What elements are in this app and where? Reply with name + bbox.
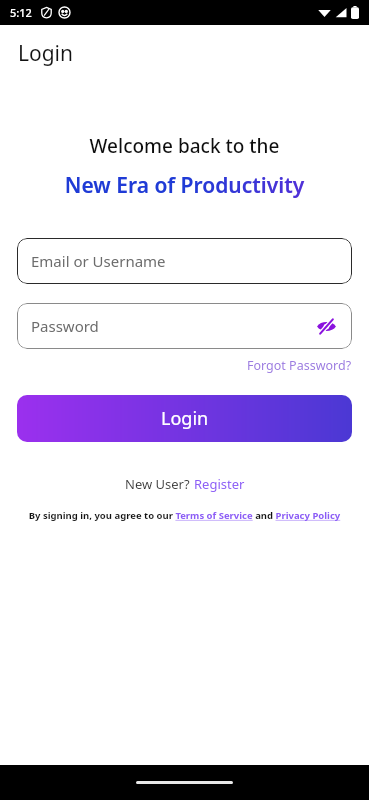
staticText: Login (161, 406, 209, 431)
staticText: New Era of Productivity (0, 171, 369, 200)
button[interactable]: Show password (312, 312, 340, 340)
staticText: New User? (125, 475, 194, 493)
staticText: Login (18, 39, 74, 68)
staticText: By signing in, you agree to our Terms of… (0, 509, 369, 522)
button[interactable]: Forgot Password? (247, 357, 352, 374)
button[interactable]: Login (17, 395, 352, 442)
staticText: Email or Username (31, 251, 166, 271)
staticText: Welcome back to the (0, 133, 369, 159)
button[interactable]: Register (194, 475, 245, 493)
button[interactable]: Password (17, 303, 352, 349)
staticText: Password (31, 316, 99, 336)
staticText: 5:12 (10, 5, 32, 20)
button[interactable]: Email or Username (17, 238, 352, 284)
